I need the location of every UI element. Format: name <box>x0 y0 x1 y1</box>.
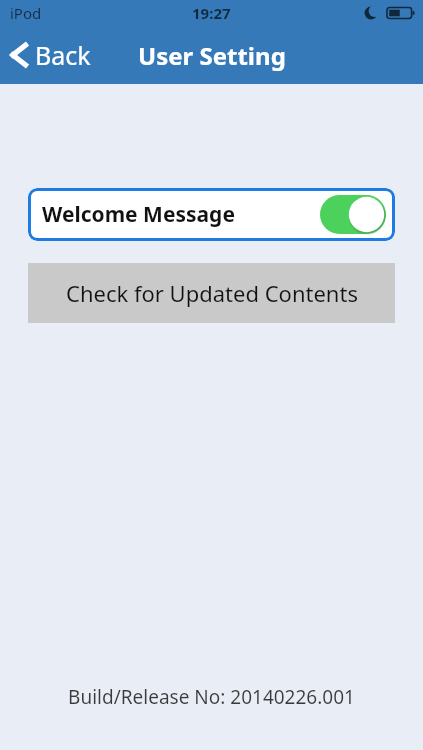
staticText: User Setting <box>138 39 286 72</box>
button[interactable]: Welcome Message <box>28 188 395 241</box>
button[interactable]: Back <box>0 32 105 78</box>
staticText: iPod <box>10 3 42 23</box>
staticText: Welcome Message <box>42 200 235 229</box>
staticText: Check for Updated Contents <box>66 278 358 308</box>
button[interactable]: Check for Updated Contents <box>28 263 395 323</box>
staticText: 19:27 <box>192 3 231 23</box>
staticText: Back <box>35 38 91 72</box>
staticText: Build/Release No: 20140226.001 <box>0 684 423 710</box>
